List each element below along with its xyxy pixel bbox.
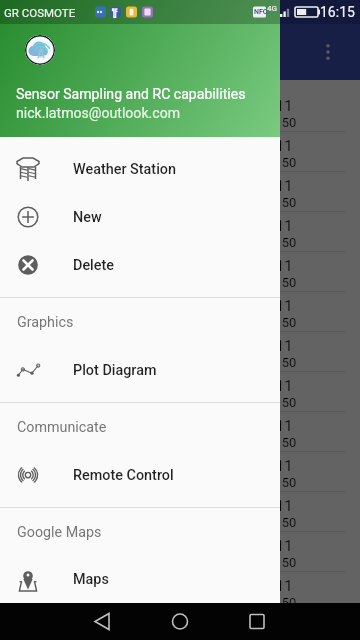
staticText: Humidity 50 bbox=[217, 195, 297, 210]
staticText: 2018-03-11 bbox=[217, 617, 293, 635]
staticText: Humidity 50 bbox=[217, 435, 297, 450]
staticText: Weather Station bbox=[73, 161, 176, 178]
button[interactable]: Back bbox=[67, 603, 137, 640]
staticText: Humidity 50 bbox=[217, 115, 297, 130]
staticText: Delete bbox=[73, 257, 114, 274]
button[interactable]: Plot Diagram bbox=[0, 346, 280, 394]
staticText: Humidity 50 bbox=[217, 395, 297, 410]
button[interactable]: Weather Station bbox=[0, 145, 280, 193]
staticText: 2018-03-11 bbox=[217, 137, 293, 155]
staticText: Humidity 50 bbox=[217, 275, 297, 290]
staticText: Remote Control bbox=[73, 467, 174, 484]
staticText: Humidity 50 bbox=[217, 355, 297, 370]
staticText: 2018-03-11 bbox=[217, 537, 293, 555]
staticText: 2018-03-11 bbox=[217, 377, 293, 395]
staticText: nick.latmos@outlook.com bbox=[16, 105, 181, 122]
staticText: 2018-03-11 bbox=[217, 577, 293, 595]
button[interactable]: Delete bbox=[0, 241, 280, 289]
button[interactable]: Maps bbox=[0, 556, 280, 603]
staticText: NFC bbox=[254, 8, 268, 16]
staticText: Google Maps bbox=[17, 524, 102, 541]
staticText: 4G bbox=[267, 4, 277, 13]
staticText: 2018-03-11 bbox=[217, 417, 293, 435]
staticText: Humidity 50 bbox=[217, 475, 297, 490]
staticText: 2018-03-11 bbox=[217, 297, 293, 315]
staticText: 2018-03-11 bbox=[217, 337, 293, 355]
staticText: Humidity 50 bbox=[217, 595, 297, 610]
staticText: 2018-03-11 bbox=[217, 257, 293, 275]
staticText: 2018-03-11 bbox=[217, 97, 293, 115]
button[interactable]: More options bbox=[306, 30, 350, 74]
staticText: Humidity 50 bbox=[217, 315, 297, 330]
staticText: Communicate bbox=[17, 419, 107, 436]
button[interactable]: Recent apps bbox=[222, 603, 292, 640]
staticText: 2018-03-11 bbox=[217, 217, 293, 235]
staticText: Maps bbox=[73, 571, 109, 588]
staticText: Sensor Sampling and RC capabilities bbox=[16, 86, 246, 103]
staticText: GR COSMOTE bbox=[4, 6, 76, 19]
staticText: Graphics bbox=[17, 314, 74, 331]
staticText: Humidity 50 bbox=[217, 515, 297, 530]
button[interactable]: Home bbox=[145, 603, 215, 640]
button[interactable]: Remote Control bbox=[0, 451, 280, 499]
staticText: 2018-03-11 bbox=[217, 177, 293, 195]
staticText: 2018-03-11 bbox=[217, 457, 293, 475]
staticText: Humidity 50 bbox=[217, 155, 297, 170]
staticText: Plot Diagram bbox=[73, 362, 157, 379]
staticText: Humidity 50 bbox=[217, 555, 297, 570]
staticText: 2018-03-11 bbox=[217, 497, 293, 515]
staticText: New bbox=[73, 209, 102, 226]
staticText: Humidity 50 bbox=[217, 235, 297, 250]
button[interactable]: New bbox=[0, 193, 280, 241]
staticText: 16:15 bbox=[320, 4, 355, 20]
